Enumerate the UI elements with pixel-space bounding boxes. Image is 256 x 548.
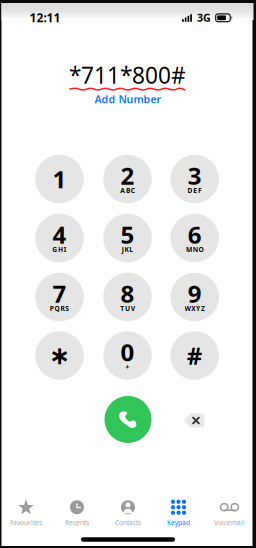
staticText [194, 363, 196, 371]
button[interactable]: 5 [103, 214, 152, 262]
button[interactable]: 3 [170, 155, 219, 203]
button[interactable]: Voicemail [204, 498, 255, 528]
staticText: + [125, 363, 129, 371]
staticText: Contacts [115, 518, 141, 527]
staticText: Keypad [167, 518, 190, 527]
button[interactable]: ∗ [35, 331, 84, 380]
staticText: ∗ [49, 341, 70, 370]
button[interactable]: 0 [103, 331, 152, 380]
button[interactable]: Add Number [94, 92, 161, 106]
button[interactable]: 7 [35, 273, 84, 321]
button[interactable]: 8 [103, 273, 152, 321]
staticText: 9 [188, 278, 202, 309]
staticText: TUV [120, 304, 135, 313]
staticText: 3G [197, 10, 211, 25]
staticText: JKL [122, 245, 133, 254]
button[interactable]: 2 [103, 155, 152, 203]
staticText: ABC [120, 186, 135, 195]
staticText: WXYZ [184, 304, 205, 313]
staticText: MNO [186, 245, 203, 254]
staticText: 3 [188, 160, 202, 191]
staticText [58, 186, 60, 195]
staticText: 5 [120, 219, 134, 250]
staticText: 2 [120, 160, 134, 191]
button[interactable]: Favourites [0, 498, 51, 528]
button[interactable]: Delete [184, 413, 204, 428]
staticText: Recents [65, 518, 89, 527]
staticText: *711*800# [69, 60, 186, 90]
staticText: 0 [120, 336, 134, 368]
staticText: Add Number [94, 92, 161, 106]
button[interactable]: 1 [35, 155, 84, 203]
button[interactable]: Keypad [153, 498, 204, 528]
staticText: GHI [52, 245, 67, 254]
staticText: PQRS [50, 304, 69, 313]
button[interactable]: Recents [51, 498, 102, 528]
button[interactable]: Contacts [102, 498, 153, 528]
button[interactable]: # [170, 331, 219, 380]
staticText: 6 [188, 219, 202, 250]
staticText: Favourites [10, 518, 42, 527]
staticText: Voicemail [214, 518, 245, 527]
staticText: 12:11 [29, 9, 60, 25]
button[interactable]: 6 [170, 214, 219, 262]
button[interactable]: 9 [170, 273, 219, 321]
button[interactable]: 4 [35, 214, 84, 262]
staticText [58, 363, 60, 371]
staticText: DEF [187, 186, 202, 195]
staticText: 8 [120, 278, 134, 309]
button[interactable]: Call [104, 396, 151, 443]
staticText: # [187, 340, 203, 371]
staticText: 7 [52, 278, 66, 309]
staticText: 4 [52, 219, 66, 250]
staticText: 1 [52, 163, 66, 195]
